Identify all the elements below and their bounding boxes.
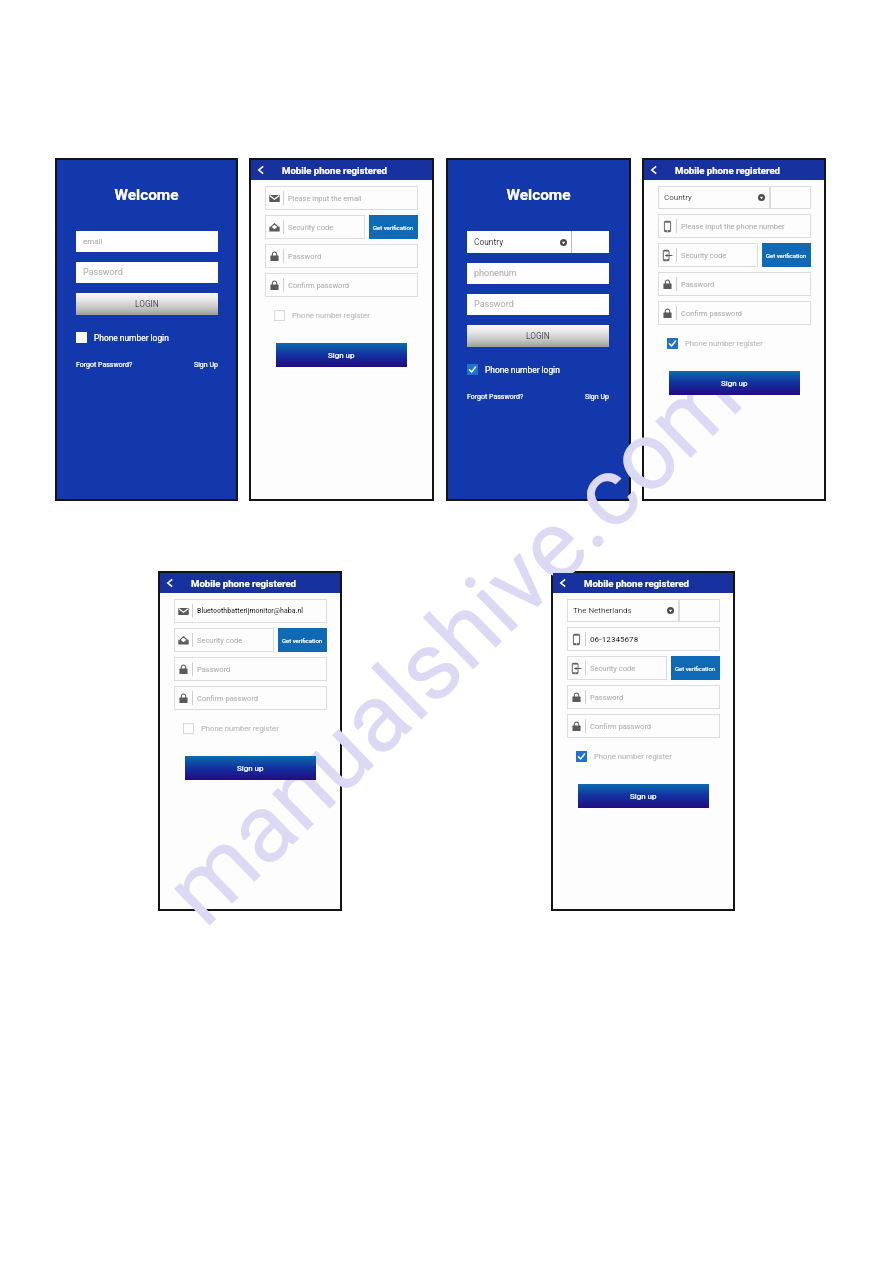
button[interactable]: Security code [174, 628, 274, 652]
button[interactable]: Sign up [578, 784, 709, 808]
staticText: Mobile phone registered [191, 578, 296, 589]
staticText: Please input the phone number [681, 222, 785, 231]
staticText: Sign up [328, 351, 355, 360]
button[interactable]: Password [265, 244, 418, 268]
staticText: LOGIN [135, 299, 159, 309]
staticText: Mobile phone registered [282, 165, 387, 176]
button[interactable]: Back [553, 573, 573, 593]
staticText: Country [474, 237, 504, 247]
button[interactable]: Country [658, 186, 811, 209]
button[interactable]: Security code [658, 243, 758, 267]
staticText: Sign up [237, 764, 264, 773]
staticText: Confirm password [288, 281, 350, 290]
staticText: phonenum [474, 268, 517, 279]
staticText: Password [197, 665, 231, 674]
staticText: Country [664, 193, 692, 202]
button[interactable]: Get verification [671, 656, 720, 680]
button[interactable]: Phone number register [576, 751, 672, 762]
button[interactable]: Confirm password [658, 301, 811, 325]
staticText: Phone number register [201, 724, 279, 733]
button[interactable]: The Netherlands [567, 599, 720, 622]
button[interactable]: Password [658, 272, 811, 296]
button[interactable]: Get verification [762, 243, 811, 267]
button[interactable]: Password [474, 294, 609, 315]
staticText: Password [474, 299, 514, 310]
button[interactable]: Get verification [369, 215, 418, 239]
button[interactable]: Phone number login [76, 332, 169, 343]
button[interactable]: Sign Up [194, 361, 218, 369]
staticText: Sign up [721, 379, 748, 388]
button[interactable]: Phone number register [667, 338, 763, 349]
staticText: Bluetoothbatterijmonitor@haba.nl [197, 607, 304, 615]
staticText: Phone number register [685, 339, 763, 348]
button[interactable]: Sign up [185, 756, 316, 780]
staticText: Confirm password [590, 722, 652, 731]
button[interactable]: Forgot Password? [467, 393, 524, 401]
button[interactable]: Country [467, 231, 609, 253]
button[interactable]: Password [567, 685, 720, 709]
button[interactable]: Phone number login [467, 364, 560, 375]
staticText: LOGIN [526, 331, 550, 341]
button[interactable]: Password [83, 262, 218, 283]
button[interactable]: Phone number register [274, 310, 370, 321]
button[interactable]: LOGIN [467, 325, 609, 347]
staticText: Phone number register [292, 311, 370, 320]
staticText: Phone number register [594, 752, 672, 761]
staticText: Security code [197, 636, 243, 645]
button[interactable]: Back [251, 160, 271, 180]
button[interactable]: Phone number register [183, 723, 279, 734]
button[interactable]: Get verification [278, 628, 327, 652]
button[interactable]: Password [174, 657, 327, 681]
staticText: Phone number login [94, 333, 169, 343]
staticText: Security code [590, 664, 636, 673]
button[interactable]: Please input the phone number [658, 214, 811, 238]
button[interactable]: Forgot Password? [76, 361, 133, 369]
staticText: Password [681, 280, 715, 289]
button[interactable]: 06-12345678 [567, 627, 720, 651]
staticText: Security code [288, 223, 334, 232]
staticText: Password [288, 252, 322, 261]
staticText: Security code [681, 251, 727, 260]
staticText: Get verification [282, 637, 323, 644]
button[interactable]: Sign up [669, 371, 800, 395]
staticText: Phone number login [485, 365, 560, 375]
staticText: manualshive.com [143, 340, 763, 947]
staticText: Get verification [766, 252, 807, 259]
staticText: Mobile phone registered [675, 165, 780, 176]
staticText: Confirm password [681, 309, 743, 318]
staticText: The Netherlands [573, 606, 632, 615]
button[interactable]: Confirm password [567, 714, 720, 738]
button[interactable]: Sign up [276, 343, 407, 367]
staticText: Password [590, 693, 624, 702]
button[interactable]: Bluetoothbatterijmonitor@haba.nl [174, 599, 327, 623]
staticText: Get verification [373, 224, 414, 231]
button[interactable]: Please input the email [265, 186, 418, 210]
button[interactable]: email [83, 231, 218, 252]
staticText: Sign up [630, 792, 657, 801]
staticText: 06-12345678 [590, 635, 639, 644]
staticText: Welcome [448, 186, 629, 204]
button[interactable]: Security code [567, 656, 667, 680]
button[interactable]: Confirm password [265, 273, 418, 297]
staticText: Password [83, 267, 123, 278]
button[interactable]: Sign Up [585, 393, 609, 401]
button[interactable]: LOGIN [76, 293, 218, 315]
staticText: Welcome [57, 186, 236, 204]
button[interactable]: Confirm password [174, 686, 327, 710]
staticText: email [83, 237, 103, 246]
button[interactable]: Back [160, 573, 180, 593]
button[interactable]: Security code [265, 215, 365, 239]
button[interactable]: phonenum [474, 263, 609, 284]
button[interactable]: Back [644, 160, 664, 180]
staticText: Please input the email [288, 194, 362, 203]
staticText: Confirm password [197, 694, 259, 703]
staticText: Get verification [675, 665, 716, 672]
staticText: Mobile phone registered [584, 578, 689, 589]
